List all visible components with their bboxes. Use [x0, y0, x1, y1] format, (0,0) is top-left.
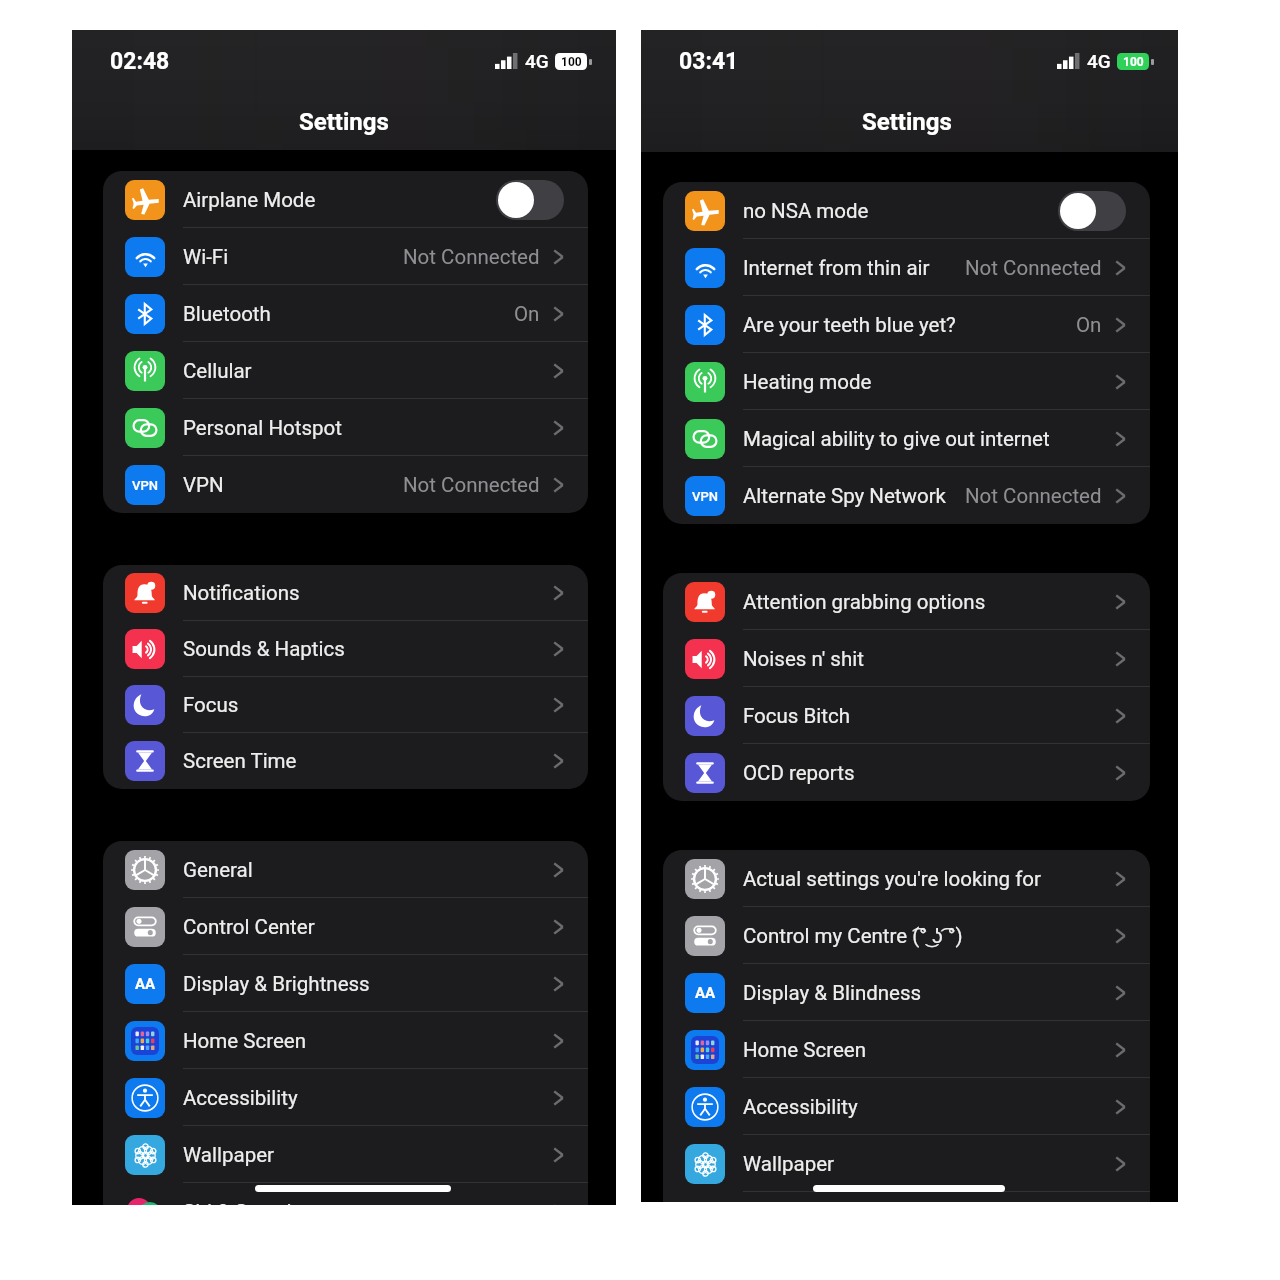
button[interactable]: OCD reports: [663, 744, 1150, 801]
staticText: Siri & Search: [183, 1200, 298, 1205]
button[interactable]: Home Screen: [103, 1012, 588, 1069]
staticText: Not Connected: [965, 484, 1102, 508]
staticText: Magical ability to give out internet: [743, 427, 1050, 451]
button[interactable]: Bluetooth: [103, 285, 588, 342]
button[interactable]: Airplane Mode toggle, off: [496, 180, 564, 220]
button[interactable]: Actual settings you're looking for: [663, 850, 1150, 907]
staticText: General: [183, 858, 253, 882]
staticText: Screen Time: [183, 749, 297, 773]
staticText: Not Connected: [403, 245, 540, 269]
staticText: Control my Centre (͡° ͜ʖ ͡°): [743, 924, 963, 948]
staticText: Bluetooth: [183, 302, 271, 326]
staticText: Control Center: [183, 915, 315, 939]
staticText: Personal Hotspot: [183, 416, 342, 440]
staticText: Heating mode: [743, 370, 872, 394]
button[interactable]: Personal Hotspot: [103, 399, 588, 456]
staticText: Home Screen: [183, 1029, 306, 1053]
staticText: OCD reports: [743, 761, 855, 785]
staticText: Wi-Fi: [183, 245, 229, 269]
staticText: 100: [561, 55, 582, 69]
button[interactable]: Airplane Mode: [103, 171, 588, 228]
staticText: VPN: [692, 489, 718, 504]
staticText: Focus Bitch: [743, 704, 850, 728]
button[interactable]: AA: [663, 964, 1150, 1021]
button[interactable]: no NSA mode: [663, 182, 1150, 239]
staticText: Accessibility: [183, 1086, 298, 1110]
button[interactable]: Cellular: [103, 342, 588, 399]
button[interactable]: VPN: [663, 467, 1150, 524]
button[interactable]: Heating mode: [663, 353, 1150, 410]
button[interactable]: Control Center: [103, 898, 588, 955]
staticText: Accessibility: [743, 1095, 858, 1119]
button[interactable]: Magical ability to give out internet: [663, 410, 1150, 467]
staticText: no NSA mode: [743, 199, 869, 223]
staticText: Sounds & Haptics: [183, 637, 345, 661]
button[interactable]: Control my Centre (͡° ͜ʖ ͡°): [663, 907, 1150, 964]
staticText: Actual settings you're looking for: [743, 867, 1041, 891]
button[interactable]: Sounds & Haptics: [103, 621, 588, 677]
button[interactable]: no NSA mode toggle, off: [1058, 191, 1126, 231]
staticText: Alternate Spy Network: [743, 484, 947, 508]
staticText: 4G: [525, 50, 549, 72]
staticText: Wallpaper: [183, 1143, 274, 1167]
staticText: Wallpaper: [743, 1152, 834, 1176]
staticText: 03:41: [679, 48, 739, 75]
staticText: Notifications: [183, 581, 300, 605]
button[interactable]: AA: [103, 955, 588, 1012]
staticText: 100: [1123, 55, 1144, 69]
staticText: Settings: [299, 108, 389, 136]
staticText: Not Connected: [403, 473, 540, 497]
staticText: Display & Blindness: [743, 981, 922, 1005]
staticText: VPN: [183, 473, 224, 497]
button[interactable]: Noises n' shit: [663, 630, 1150, 687]
staticText: Home Screen: [743, 1038, 866, 1062]
button[interactable]: Focus: [103, 677, 588, 733]
button[interactable]: Accessibility: [663, 1078, 1150, 1135]
staticText: AA: [135, 975, 156, 993]
staticText: Settings: [862, 108, 952, 136]
button[interactable]: Attention grabbing options: [663, 573, 1150, 630]
staticText: Not Connected: [965, 256, 1102, 280]
staticText: Airplane Mode: [183, 188, 316, 212]
button[interactable]: Wallpaper: [103, 1126, 588, 1183]
button[interactable]: Focus Bitch: [663, 687, 1150, 744]
button[interactable]: Are your teeth blue yet?: [663, 296, 1150, 353]
button[interactable]: VPN: [103, 456, 588, 513]
button[interactable]: Wallpaper: [663, 1135, 1150, 1192]
staticText: Cellular: [183, 359, 252, 383]
button[interactable]: Internet from thin air: [663, 239, 1150, 296]
staticText: Focus: [183, 693, 239, 717]
staticText: Attention grabbing options: [743, 590, 986, 614]
button[interactable]: Siri & Search: [103, 1183, 588, 1205]
button[interactable]: General: [103, 841, 588, 898]
button[interactable]: Notifications: [103, 565, 588, 621]
staticText: On: [514, 302, 540, 326]
button[interactable]: Home Screen: [663, 1021, 1150, 1078]
staticText: Display & Brightness: [183, 972, 370, 996]
staticText: VPN: [132, 478, 158, 493]
staticText: Are your teeth blue yet?: [743, 313, 956, 337]
button[interactable]: Accessibility: [103, 1069, 588, 1126]
staticText: Noises n' shit: [743, 647, 864, 671]
staticText: 4G: [1087, 50, 1111, 72]
button[interactable]: Wi-Fi: [103, 228, 588, 285]
staticText: Internet from thin air: [743, 256, 930, 280]
staticText: 02:48: [110, 48, 170, 75]
staticText: On: [1076, 313, 1102, 337]
staticText: AA: [695, 984, 716, 1002]
button[interactable]: Screen Time: [103, 733, 588, 789]
